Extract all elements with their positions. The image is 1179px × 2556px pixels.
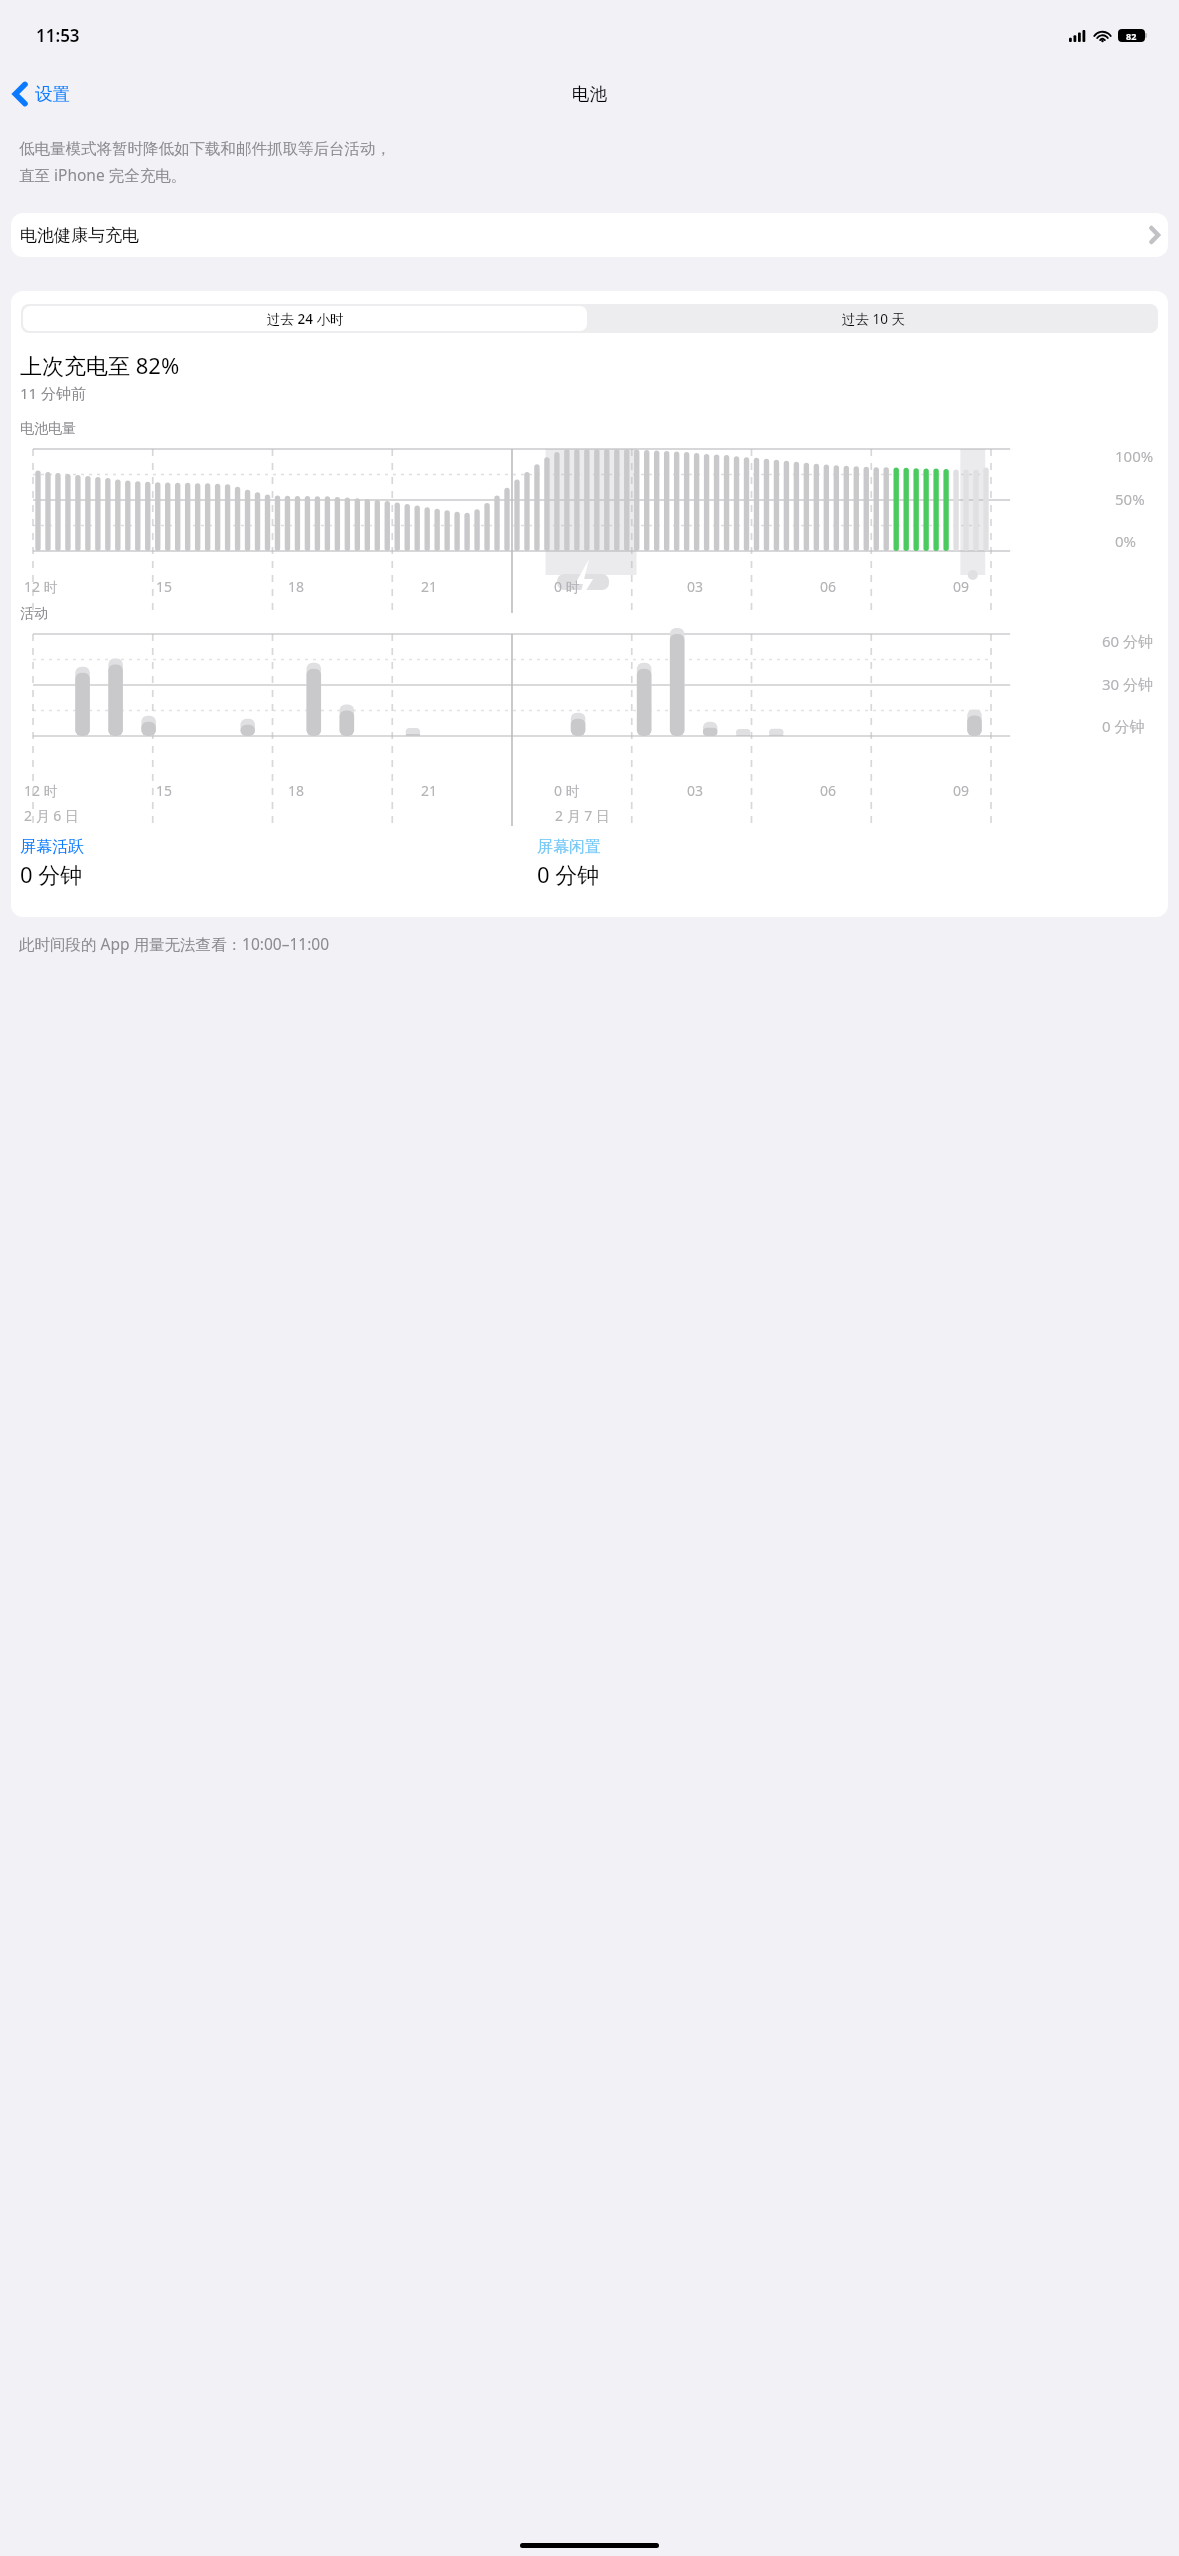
button[interactable]: 设置 [0, 77, 82, 111]
staticText: 03 [687, 577, 704, 596]
staticText: 屏幕闲置 [537, 837, 601, 857]
staticText: 低电量模式将暂时降低如下载和邮件抓取等后台活动， [19, 139, 391, 159]
staticText: 11:53 [36, 24, 80, 47]
staticText: 18 [288, 577, 305, 596]
staticText: 15 [156, 781, 173, 800]
staticText: 82 [1126, 30, 1137, 42]
staticText: 电池健康与充电 [20, 225, 139, 246]
staticText: 12 时 [24, 577, 58, 596]
staticText: 过去 10 天 [842, 310, 905, 328]
button[interactable]: 过去 24 小时 [23, 306, 587, 331]
staticText: 2 月 7 日 [555, 806, 610, 825]
staticText: 电池 [572, 83, 607, 105]
staticText: 03 [687, 781, 704, 800]
staticText: 2 月 6 日 [24, 806, 79, 825]
staticText: 06 [820, 781, 837, 800]
staticText: 活动 [20, 605, 48, 623]
staticText: 09 [953, 781, 970, 800]
staticText: 06 [820, 577, 837, 596]
staticText: 50% [1115, 489, 1145, 509]
staticText: 18 [288, 781, 305, 800]
staticText: 设置 [35, 83, 70, 105]
staticText: 上次充电至 82% [20, 350, 180, 380]
staticText: 此时间段的 App 用量无法查看：10:00–11:00 [19, 933, 330, 954]
staticText: 11 分钟前 [20, 383, 87, 403]
staticText: 60 分钟 [1102, 631, 1154, 651]
staticText: 09 [953, 577, 970, 596]
staticText: 过去 24 小时 [267, 310, 344, 328]
staticText: 0 分钟 [20, 859, 83, 889]
staticText: 0% [1115, 531, 1137, 551]
staticText: 15 [156, 577, 173, 596]
staticText: 100% [1115, 446, 1154, 466]
staticText: 30 分钟 [1102, 674, 1154, 694]
staticText: 0 时 [554, 577, 580, 596]
staticText: 直至 iPhone 完全充电。 [19, 164, 187, 185]
button[interactable]: 电池健康与充电 [11, 213, 1168, 257]
staticText: 21 [421, 781, 438, 800]
staticText: 0 时 [554, 781, 580, 800]
button[interactable]: 过去 10 天 [589, 304, 1158, 333]
staticText: 0 分钟 [537, 859, 600, 889]
staticText: 21 [421, 577, 438, 596]
staticText: 0 分钟 [1102, 716, 1145, 736]
staticText: 12 时 [24, 781, 58, 800]
staticText: 电池电量 [20, 420, 76, 438]
staticText: 屏幕活跃 [20, 837, 84, 857]
